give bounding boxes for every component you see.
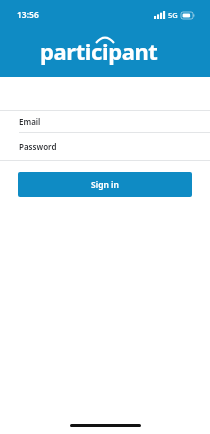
staticText: Email: [19, 116, 41, 127]
staticText: Password: [19, 141, 57, 152]
staticText: Sign in: [91, 179, 119, 191]
button[interactable]: Password: [0, 133, 210, 160]
staticText: participant: [40, 36, 158, 66]
staticText: 13:56: [17, 9, 39, 21]
staticText: 5G: [168, 10, 178, 20]
other: Cellular signal: [154, 11, 165, 19]
button[interactable]: Sign in: [18, 172, 192, 197]
other: Battery: [181, 12, 195, 19]
button[interactable]: Email: [0, 111, 210, 132]
